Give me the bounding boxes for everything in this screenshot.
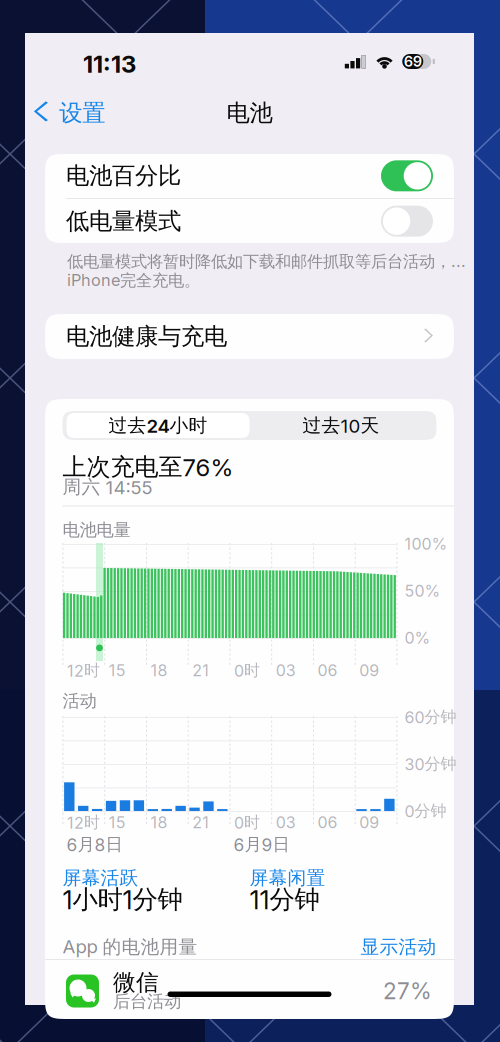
staticText: 电池电量 [62,519,130,541]
staticText: 50% [404,581,440,601]
staticText: iPhone完全充电。 [67,270,200,291]
staticText: 设置 [59,98,105,128]
staticText: 06 [317,813,337,832]
staticText: 12时 [67,660,100,681]
staticText: 18 [150,661,167,680]
staticText: 27% [383,977,432,1005]
button[interactable]: 微信 [45,965,454,1017]
staticText: 12时 [67,812,100,833]
staticText: 屏幕闲置 [249,866,325,890]
staticText: 0时 [234,660,260,681]
button[interactable]: 过去10天 [249,413,432,438]
staticText: 1小时1分钟 [62,883,182,915]
staticText: 低电量模式 [66,206,181,236]
staticText: 过去10天 [302,414,379,437]
button[interactable]: 设置 [25,88,119,138]
button[interactable]: 电池健康与充电 [45,314,454,359]
staticText: 上次充电至76% [62,452,233,482]
staticText: 屏幕活跃 [62,866,138,890]
staticText: 100% [404,534,447,554]
staticText: 电池 [226,98,272,128]
staticText: 低电量模式将暂时降低如下载和邮件抓取等后台活动，直至 [67,251,467,272]
staticText: 11分钟 [249,883,319,915]
staticText: 活动 [62,690,96,712]
staticText: 21 [192,661,209,680]
staticText: 6月9日 [233,834,289,855]
staticText: 周六 14:55 [62,475,152,499]
staticText: 0分钟 [404,801,446,821]
staticText: 微信 [113,968,159,997]
staticText: 18 [150,813,167,832]
staticText: 11:13 [83,49,136,78]
button[interactable]: 低电量模式 [45,199,454,243]
staticText: 09 [359,661,379,680]
staticText: 电池百分比 [66,161,181,191]
staticText: App 的电池用量 [62,935,197,959]
staticText: 60分钟 [404,707,456,727]
staticText: 03 [276,661,296,680]
staticText: 后台活动 [113,991,181,1012]
staticText: 30分钟 [404,754,456,774]
staticText: 06 [317,661,337,680]
staticText: 15 [109,661,126,680]
staticText: 显示活动 [360,935,436,959]
staticText: 21 [192,813,209,832]
staticText: 0时 [234,812,260,833]
staticText: 03 [276,813,296,832]
button[interactable]: 电池百分比 [45,154,454,198]
staticText: 过去24小时 [108,414,207,437]
button[interactable]: 过去24小时 [66,413,249,438]
staticText: 69 [404,53,422,70]
button[interactable]: 显示活动 [360,938,436,956]
staticText: 6月8日 [66,834,122,855]
staticText: 15 [109,813,126,832]
staticText: 09 [359,813,379,832]
staticText: 0% [404,628,430,648]
staticText: 电池健康与充电 [66,322,227,351]
